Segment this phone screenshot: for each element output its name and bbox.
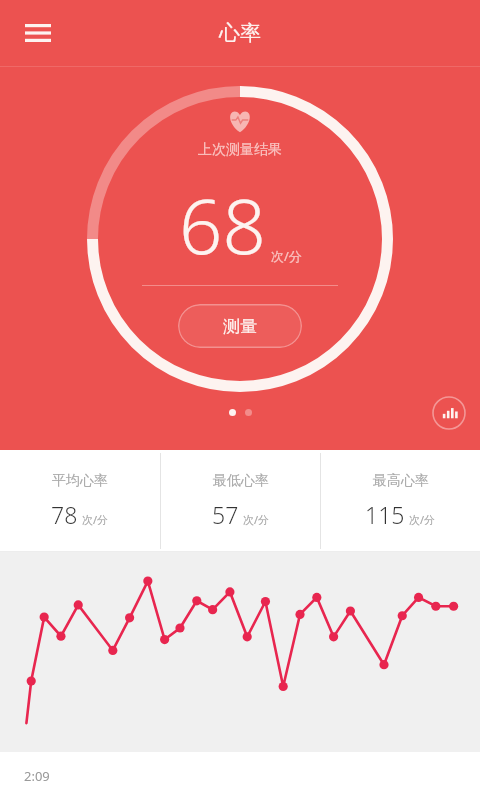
- staticText: 测量: [223, 316, 257, 337]
- staticText: 次/分: [243, 512, 270, 527]
- staticText: 次/分: [82, 512, 109, 527]
- button[interactable]: [0, 552, 480, 752]
- staticText: 68: [179, 173, 266, 277]
- button[interactable]: 平均心率: [0, 450, 160, 552]
- staticText: 心率: [219, 20, 261, 46]
- button[interactable]: Menu: [16, 11, 60, 55]
- staticText: 次/分: [271, 247, 302, 265]
- button[interactable]: Statistics: [432, 396, 466, 430]
- staticText: 2:09: [24, 767, 50, 785]
- staticText: 最高心率: [373, 472, 429, 490]
- staticText: 上次测量结果: [198, 141, 282, 159]
- staticText: 78: [51, 499, 78, 530]
- staticText: 最低心率: [213, 472, 269, 490]
- button[interactable]: 最高心率: [321, 450, 480, 552]
- staticText: 平均心率: [52, 472, 108, 490]
- staticText: 次/分: [409, 512, 436, 527]
- button[interactable]: 测量: [178, 304, 302, 348]
- staticText: 57: [212, 499, 239, 530]
- button[interactable]: 最低心率: [161, 450, 320, 552]
- staticText: 115: [365, 499, 405, 530]
